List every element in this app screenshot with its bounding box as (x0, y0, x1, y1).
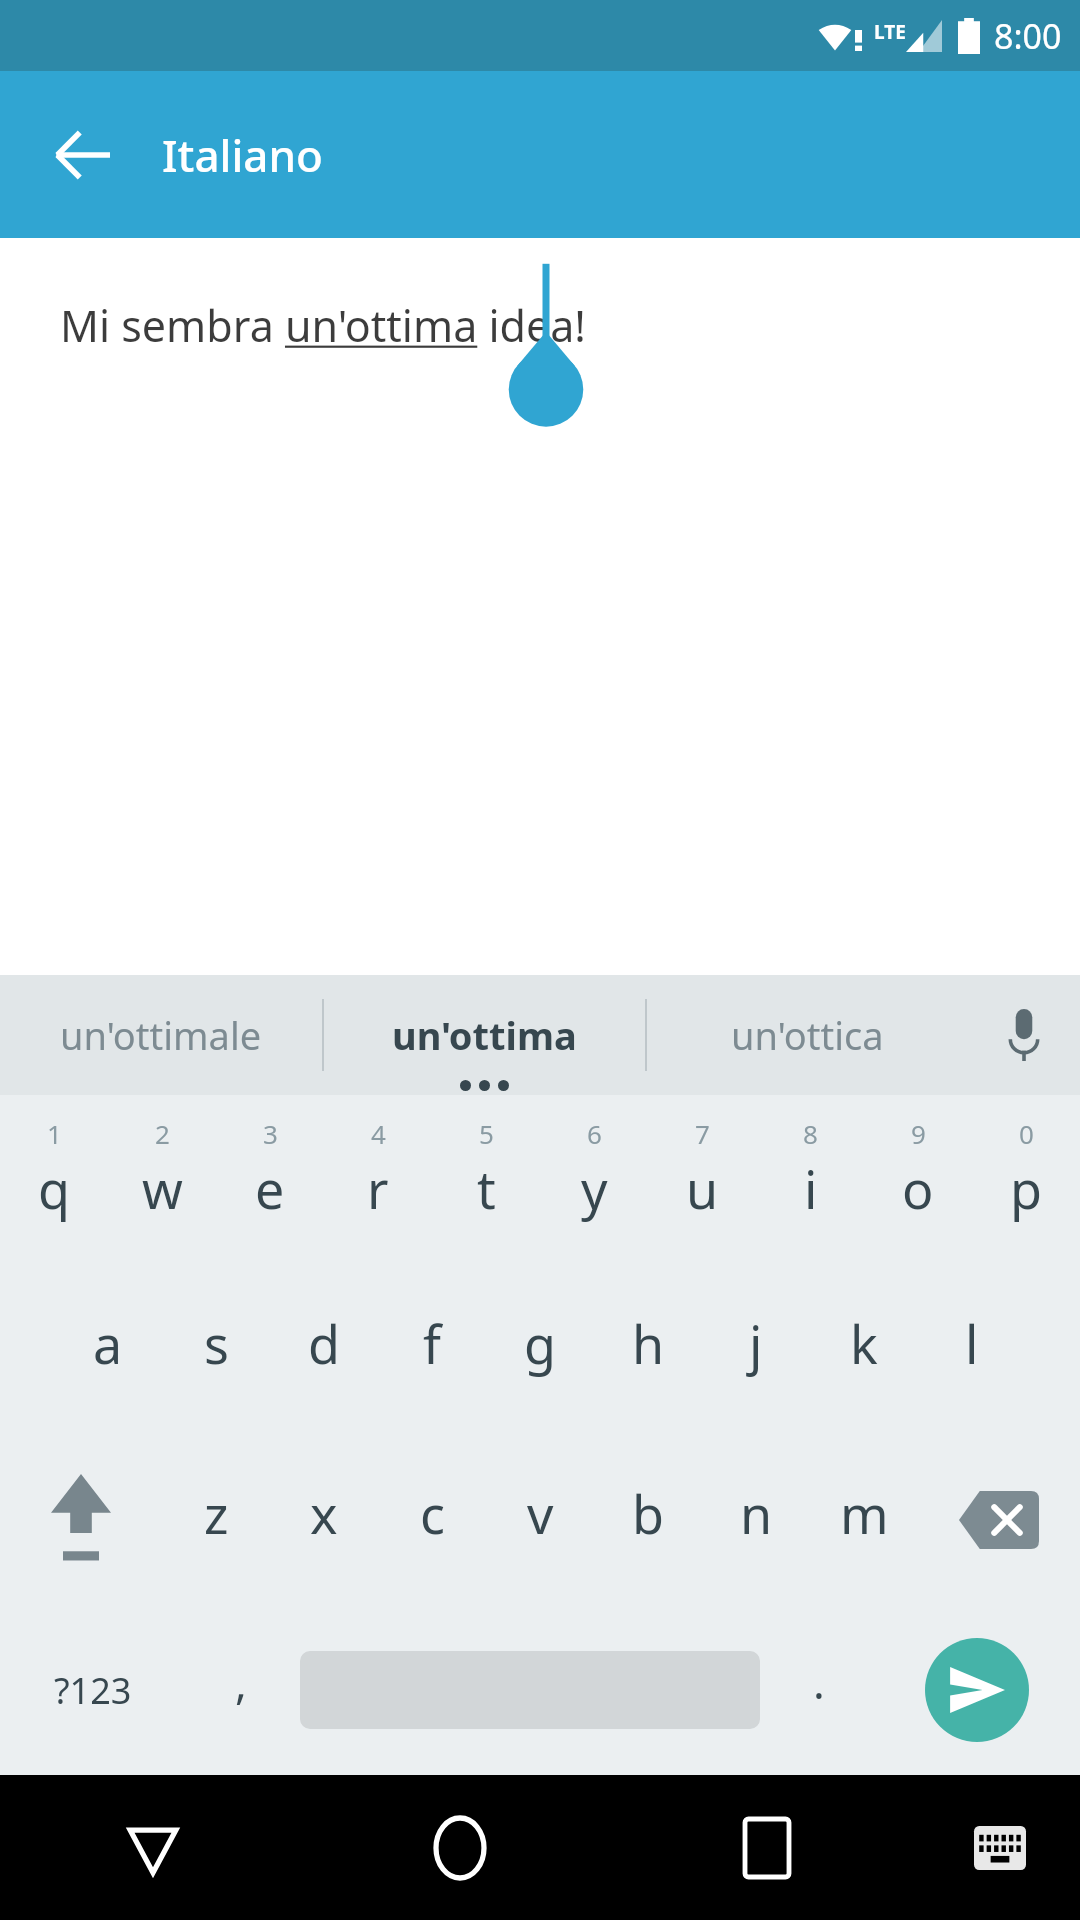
button[interactable]: un'ottima (324, 975, 645, 1095)
button[interactable]: k (810, 1265, 918, 1435)
staticText: LTE (874, 19, 906, 45)
staticText: 4 (371, 1116, 386, 1151)
button[interactable]: 4 (324, 1095, 432, 1265)
staticText: p (1010, 1153, 1042, 1224)
staticText: 2 (155, 1116, 170, 1151)
staticText: x (310, 1478, 338, 1549)
button[interactable]: c (378, 1435, 486, 1605)
staticText: ?123 (54, 1666, 132, 1715)
staticText: m (840, 1478, 889, 1549)
staticText: 1 (47, 1116, 62, 1151)
staticText: n (740, 1478, 773, 1549)
button[interactable]: Home (306, 1775, 613, 1920)
staticText: 0 (1019, 1116, 1034, 1151)
staticText: 6 (587, 1116, 602, 1151)
staticText: 8:00 (994, 13, 1062, 59)
button[interactable]: un'ottimale (0, 975, 322, 1095)
button[interactable]: s (162, 1265, 270, 1435)
button[interactable]: , (186, 1605, 295, 1775)
staticText: y (581, 1153, 608, 1224)
staticText: 5 (479, 1116, 494, 1151)
staticText: l (965, 1308, 979, 1379)
button[interactable]: un'ottica (647, 975, 968, 1095)
button[interactable]: 2 (108, 1095, 216, 1265)
button[interactable]: a (54, 1265, 162, 1435)
button[interactable]: Send (873, 1605, 1080, 1775)
staticText: u (686, 1153, 719, 1224)
staticText: 8 (803, 1116, 818, 1151)
button[interactable]: j (702, 1265, 810, 1435)
button[interactable]: z (162, 1435, 270, 1605)
button[interactable]: d (270, 1265, 378, 1435)
button[interactable]: Back (42, 115, 122, 195)
staticText: j (749, 1308, 763, 1379)
button[interactable]: n (702, 1435, 810, 1605)
button[interactable]: l (918, 1265, 1026, 1435)
button[interactable]: Space (295, 1605, 764, 1775)
staticText: s (204, 1308, 229, 1379)
staticText: un'ottima (392, 1009, 577, 1061)
staticText: d (308, 1308, 340, 1379)
button[interactable]: 3 (216, 1095, 324, 1265)
button[interactable]: h (594, 1265, 702, 1435)
button[interactable]: ?123 (0, 1605, 186, 1775)
button[interactable]: 6 (540, 1095, 648, 1265)
staticText: f (423, 1308, 441, 1379)
staticText: e (255, 1153, 285, 1224)
button[interactable]: g (486, 1265, 594, 1435)
staticText: w (142, 1153, 183, 1224)
button[interactable]: Shift (0, 1435, 162, 1605)
button[interactable]: 7 (648, 1095, 756, 1265)
staticText: 7 (695, 1116, 710, 1151)
staticText: v (527, 1478, 554, 1549)
staticText: Mi sembra un'ottima idea! (60, 296, 586, 355)
button[interactable]: m (810, 1435, 918, 1605)
staticText: g (524, 1308, 556, 1379)
button[interactable]: f (378, 1265, 486, 1435)
staticText: i (804, 1153, 818, 1224)
button[interactable]: 9 (864, 1095, 972, 1265)
staticText: , (235, 1652, 247, 1712)
button[interactable]: x (270, 1435, 378, 1605)
button[interactable]: . (764, 1605, 873, 1775)
button[interactable]: 8 (756, 1095, 864, 1265)
staticText: k (850, 1308, 878, 1379)
staticText: c (420, 1478, 445, 1549)
button[interactable]: Recents (613, 1775, 920, 1920)
staticText: 3 (263, 1116, 278, 1151)
staticText: z (204, 1478, 229, 1549)
staticText: h (632, 1308, 665, 1379)
staticText: un'ottimale (60, 1009, 262, 1061)
button[interactable]: b (594, 1435, 702, 1605)
staticText: Italiano (162, 125, 323, 185)
button[interactable]: Back (0, 1775, 306, 1920)
staticText: q (38, 1153, 70, 1224)
button[interactable]: Voice input (968, 975, 1080, 1095)
staticText: un'ottica (731, 1009, 884, 1061)
button[interactable]: 1 (0, 1095, 108, 1265)
staticText: . (813, 1652, 825, 1712)
staticText: b (632, 1478, 664, 1549)
button[interactable]: 5 (432, 1095, 540, 1265)
button[interactable]: Delete (918, 1435, 1080, 1605)
staticText: r (367, 1153, 389, 1224)
staticText: 9 (911, 1116, 926, 1151)
button[interactable]: Change keyboard (920, 1775, 1080, 1920)
button[interactable]: v (486, 1435, 594, 1605)
staticText: o (902, 1153, 934, 1224)
staticText: t (477, 1153, 496, 1224)
button[interactable]: 0 (972, 1095, 1080, 1265)
staticText: a (93, 1308, 123, 1379)
